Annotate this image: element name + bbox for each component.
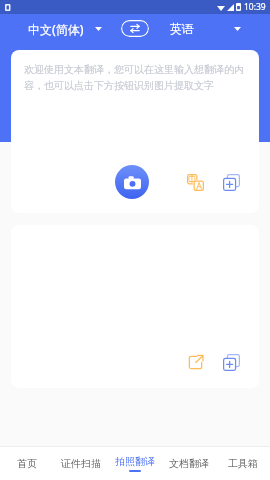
button[interactable]: 欢迎使用文本翻译，您可以在这里输入想翻译的内 容，也可以点击下方按钮识别图片提取… — [11, 50, 259, 213]
button[interactable]: 英语 — [149, 21, 262, 36]
staticText: 文档翻译 — [169, 457, 209, 470]
staticText: 中文(简体) — [28, 21, 84, 37]
staticText: 证件扫描 — [61, 457, 101, 470]
staticText: 10:39 — [244, 1, 266, 13]
button[interactable]: Copy — [219, 350, 243, 374]
staticText: 首页 — [17, 457, 37, 470]
button[interactable]: Translate — [183, 170, 207, 194]
button[interactable]: Share — [183, 350, 207, 374]
staticText: 欢迎使用文本翻译，您可以在这里输入想翻译的内 容，也可以点击下方按钮识别图片提取… — [24, 63, 244, 92]
button[interactable]: 中文(简体) — [8, 21, 121, 37]
staticText: 拍照翻译 — [115, 455, 155, 468]
button[interactable]: Take photo — [115, 165, 149, 199]
button[interactable]: Swap languages — [121, 20, 149, 37]
button[interactable]: 拍照翻译 — [108, 447, 162, 480]
button[interactable]: Share — [11, 225, 259, 388]
staticText: 工具箱 — [228, 457, 258, 470]
button[interactable]: 工具箱 — [216, 447, 270, 480]
button[interactable]: 证件扫描 — [54, 447, 108, 480]
button[interactable]: Copy — [219, 170, 243, 194]
button[interactable]: 首页 — [0, 447, 54, 480]
button[interactable]: 文档翻译 — [162, 447, 216, 480]
staticText: 英语 — [170, 21, 194, 36]
